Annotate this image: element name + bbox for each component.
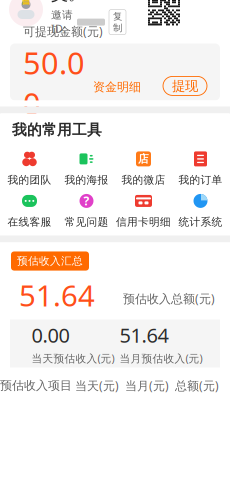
staticText: 可提现金额(元) [23, 23, 103, 39]
staticText: 复制 [113, 11, 122, 34]
staticText: 预估收入总额(元) [123, 291, 215, 306]
staticText: 艾。 [51, 0, 85, 4]
staticText: ♛ [19, 0, 33, 9]
button[interactable]: 我的二维码 [148, 0, 180, 25]
staticText: 提现 [172, 78, 198, 94]
button[interactable]: 我的订单 [172, 147, 229, 189]
staticText: 预估收入汇总 [17, 254, 83, 268]
staticText: 当天(元) [75, 378, 119, 393]
staticText: 我的团队 [7, 173, 51, 186]
staticText: 50.00 [23, 42, 85, 124]
button[interactable]: 店 [115, 147, 172, 189]
staticText: 我的微店 [121, 173, 165, 186]
button[interactable]: 复制 [109, 10, 126, 35]
staticText: 当月(元) [125, 378, 169, 393]
staticText: 当天预估收入(元) [31, 351, 114, 365]
button[interactable]: 我的团队 [1, 147, 58, 189]
staticText: ? [83, 193, 89, 209]
staticText: 51.64 [19, 276, 95, 315]
staticText: 常见问题 [64, 215, 108, 228]
staticText: 信用卡明细 [116, 215, 171, 228]
staticText: 我的订单 [178, 173, 222, 186]
staticText: 店 [138, 152, 149, 165]
staticText: 当月预估收入(元) [119, 351, 202, 365]
button[interactable]: ? [58, 189, 115, 231]
button[interactable]: 资金明细 [85, 72, 141, 94]
staticText: 预估收入项目 [0, 378, 72, 393]
button[interactable]: 我的海报 [58, 147, 115, 189]
staticText: 51.64 [119, 322, 168, 348]
button[interactable]: 信用卡明细 [115, 189, 172, 231]
staticText: 邀请ID: [51, 8, 73, 36]
staticText: 0.00 [31, 322, 69, 348]
button[interactable]: 在线客服 [1, 189, 58, 231]
button[interactable]: 统计系统 [172, 189, 229, 231]
staticText: 统计系统 [178, 215, 222, 228]
staticText: 总额(元) [175, 378, 219, 393]
staticText: 资金明细 [93, 80, 141, 94]
button[interactable]: 提现 [163, 70, 207, 95]
staticText: 我的海报 [64, 173, 108, 186]
staticText: 我的常用工具 [12, 121, 102, 139]
staticText: 在线客服 [7, 215, 51, 228]
